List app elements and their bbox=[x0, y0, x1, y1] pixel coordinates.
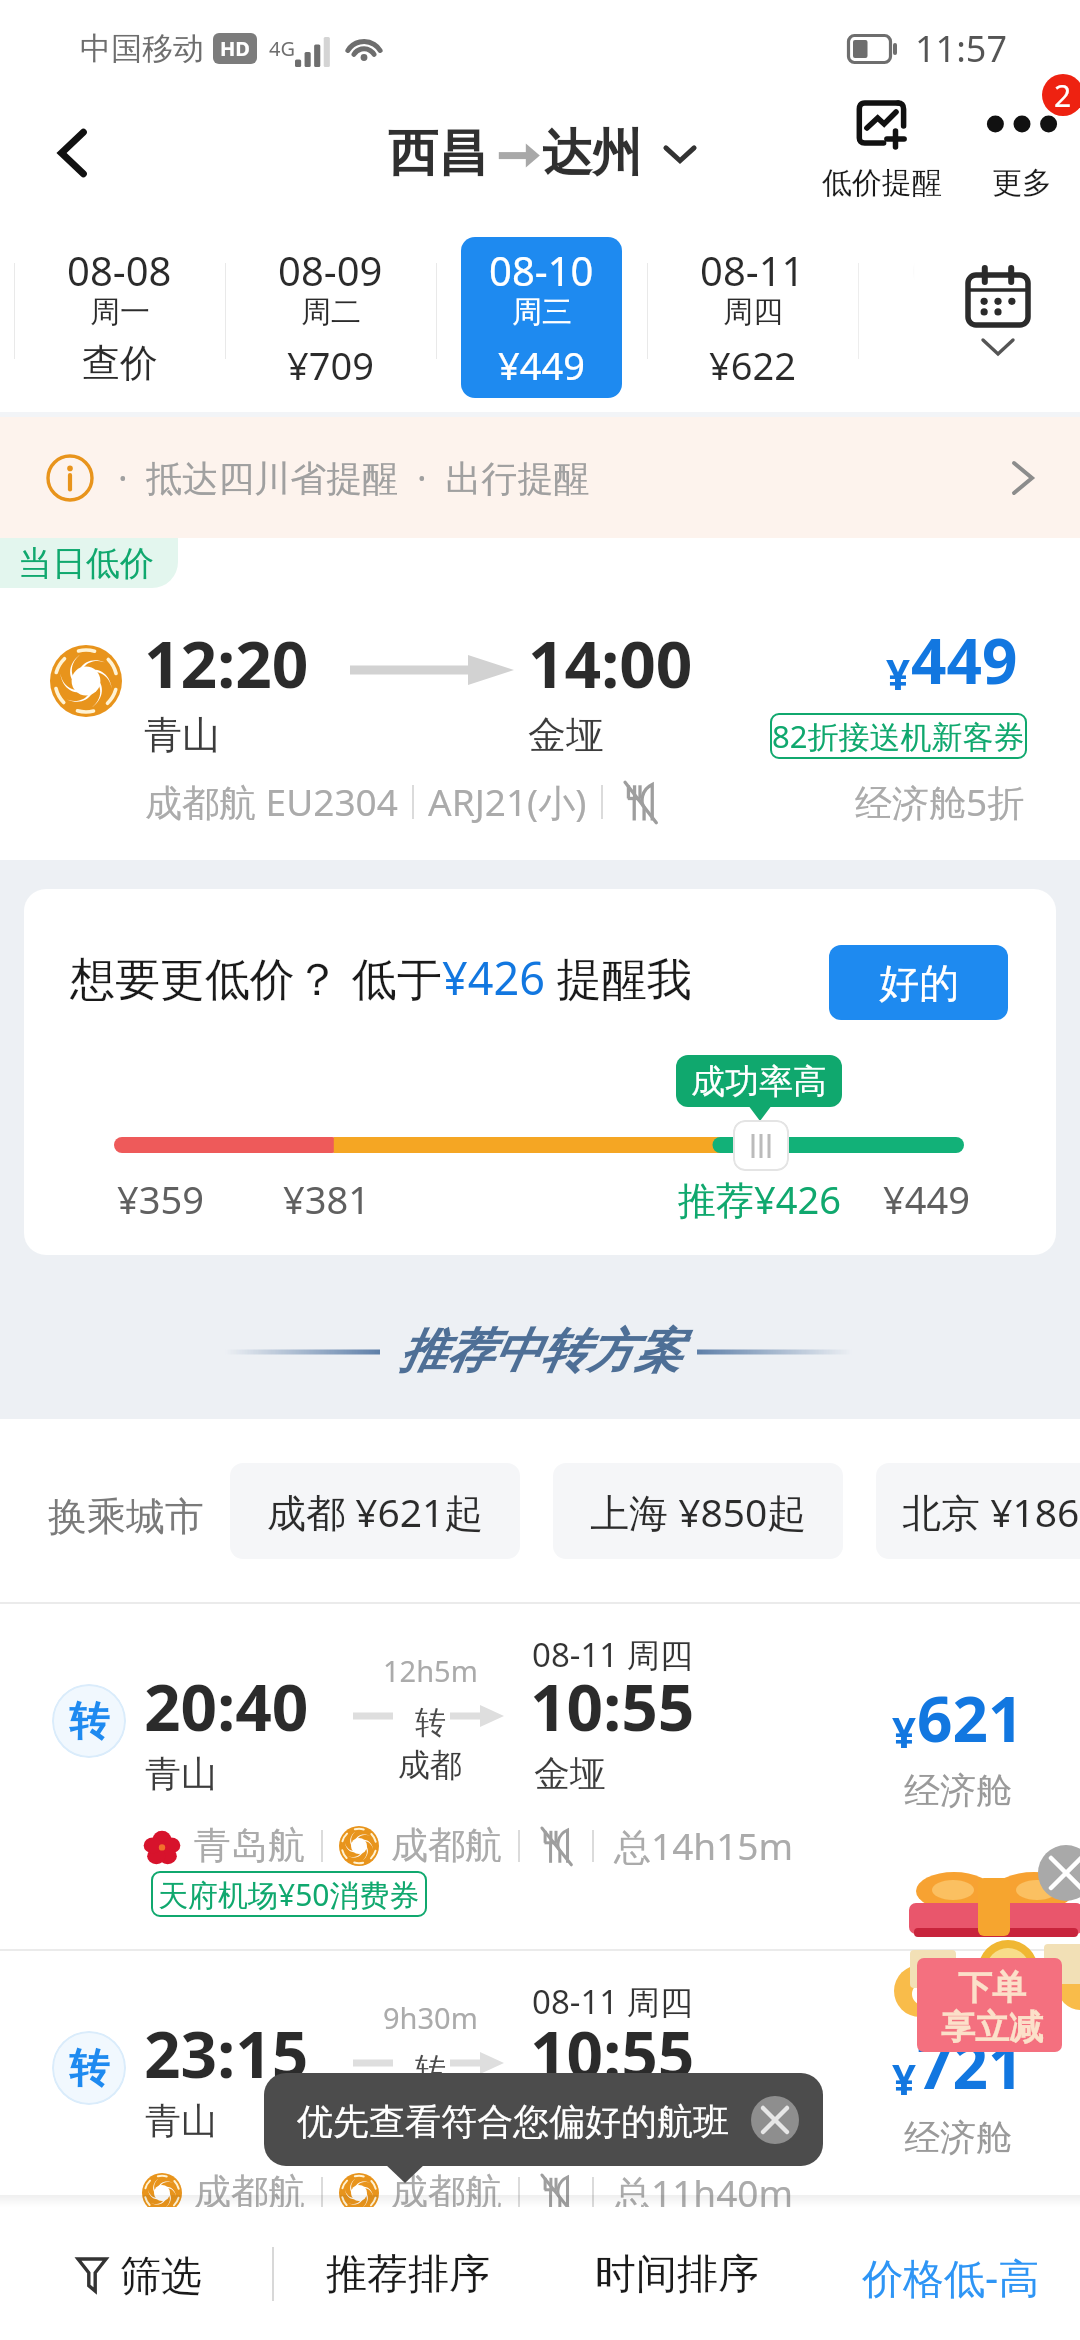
staticText: 青岛航 bbox=[194, 1822, 305, 1869]
staticText: 金垭 bbox=[534, 2098, 606, 2143]
staticText: 08-09 bbox=[278, 243, 383, 297]
staticText: 享立减 bbox=[941, 2006, 1043, 2049]
staticText: 周三 bbox=[512, 293, 572, 331]
staticText: 08-08 bbox=[67, 243, 172, 297]
staticText: 08-10 bbox=[489, 243, 594, 297]
staticText: 转 bbox=[69, 2043, 109, 2093]
staticText: 提醒我 bbox=[545, 947, 692, 1008]
staticText: 低价提醒 bbox=[822, 164, 942, 202]
staticText: 时间排序 bbox=[595, 2249, 759, 2301]
staticText: 推荐中转方案 bbox=[399, 1322, 681, 1381]
button[interactable]: 筛选 bbox=[76, 2251, 202, 2299]
staticText: 11:57 bbox=[915, 24, 1008, 73]
staticText: ¥622 bbox=[709, 339, 796, 391]
button[interactable]: 低价提醒 bbox=[800, 100, 964, 202]
staticText: ¥ bbox=[892, 2050, 917, 2107]
staticText: 12:20 bbox=[144, 620, 309, 707]
staticText: 转 bbox=[415, 2050, 446, 2089]
button[interactable]: 08-08 bbox=[39, 237, 200, 398]
staticText: 价格低-高 bbox=[862, 2249, 1040, 2301]
staticText: 621 bbox=[917, 1676, 1024, 1760]
staticText: 20:40 bbox=[144, 1663, 309, 1750]
staticText: 天府机场¥50消费券 bbox=[158, 1874, 420, 1915]
staticText: 金垭 bbox=[528, 711, 604, 759]
button[interactable]: 西昌 bbox=[388, 122, 696, 185]
button[interactable]: 推荐排序 bbox=[326, 2249, 490, 2301]
staticText: 上海 ¥850起 bbox=[590, 1485, 807, 1538]
staticText: 想要更低价？ 低于 bbox=[70, 947, 442, 1008]
staticText: 成都 ¥621起 bbox=[267, 1485, 484, 1538]
staticText: 经济舱5折 bbox=[855, 776, 1025, 827]
staticText: · 抵达四川省提醒 · 出行提醒 bbox=[118, 453, 590, 502]
staticText: ¥709 bbox=[287, 339, 374, 391]
button[interactable]: 好的 bbox=[829, 945, 1008, 1020]
staticText: 更多 bbox=[992, 164, 1052, 202]
staticText: 成功率高 bbox=[691, 1060, 827, 1103]
button[interactable]: 08-09 bbox=[250, 237, 411, 398]
staticText: 推荐¥426 bbox=[678, 1173, 841, 1225]
staticText: 北京 ¥1860起 bbox=[902, 1485, 1080, 1538]
staticText: ¥388 bbox=[920, 339, 1007, 391]
staticText: 青山 bbox=[145, 1751, 217, 1796]
staticText: 周四 bbox=[723, 293, 783, 331]
staticText: 2 bbox=[1054, 75, 1072, 116]
staticText: 14:00 bbox=[528, 620, 693, 707]
staticText: 721 bbox=[917, 2023, 1024, 2107]
button[interactable]: Open calendar bbox=[915, 210, 1080, 412]
button[interactable]: 08-10 bbox=[461, 237, 622, 398]
staticText: 达州 bbox=[542, 122, 642, 185]
staticText: 换乘城市 bbox=[48, 1492, 204, 1541]
staticText: 08-11 bbox=[700, 243, 805, 297]
staticText: 08-11 周四 bbox=[532, 1979, 693, 2024]
staticText: 总14h15m bbox=[614, 1820, 794, 1871]
button[interactable]: 成都 ¥621起 bbox=[230, 1463, 520, 1559]
staticText: 周一 bbox=[90, 293, 150, 331]
staticText: HD bbox=[220, 35, 250, 62]
staticText: 23:15 bbox=[144, 2010, 309, 2097]
staticText: 查价 bbox=[82, 339, 158, 387]
staticText: 下单 bbox=[958, 1966, 1026, 2009]
button[interactable]: 价格低-高 bbox=[862, 2249, 1040, 2301]
staticText: ARJ21(小) bbox=[428, 776, 587, 827]
staticText: 经济舱 bbox=[904, 1768, 1012, 1813]
staticText: ¥449 bbox=[498, 339, 585, 391]
staticText: 10:55 bbox=[530, 1663, 695, 1750]
button[interactable]: 转 bbox=[0, 1602, 1080, 1949]
button[interactable]: 转 bbox=[0, 1949, 1080, 2197]
button[interactable]: 时间排序 bbox=[595, 2249, 759, 2301]
button[interactable]: Back bbox=[34, 113, 114, 193]
button[interactable]: 08-12 bbox=[883, 237, 1044, 398]
staticText: 转 bbox=[415, 1703, 446, 1742]
staticText: 10:55 bbox=[530, 2010, 695, 2097]
button[interactable]: Close promotion bbox=[1038, 1845, 1080, 1901]
staticText: 08-11 周四 bbox=[532, 1632, 693, 1677]
staticText: 转 bbox=[69, 1696, 109, 1746]
staticText: 08-12 bbox=[911, 243, 1016, 297]
button[interactable]: Dismiss tip bbox=[751, 2096, 799, 2144]
button[interactable]: 北京 ¥1860起 bbox=[876, 1463, 1080, 1559]
staticText: 西昌 bbox=[388, 122, 488, 185]
staticText: ¥ bbox=[886, 645, 911, 702]
staticText: 成都航 EU2304 bbox=[145, 776, 398, 827]
staticText: ¥359 bbox=[117, 1173, 204, 1225]
staticText: 成都航 bbox=[194, 2169, 305, 2216]
staticText: 经济舱 bbox=[904, 2115, 1012, 2160]
staticText: 青山 bbox=[145, 2098, 217, 2143]
button[interactable]: 08-11 bbox=[672, 237, 833, 398]
staticText: 成都 bbox=[398, 2092, 462, 2132]
staticText: 周二 bbox=[301, 293, 361, 331]
staticText: 中国移动 bbox=[80, 29, 204, 68]
staticText: ¥ bbox=[892, 1703, 917, 1760]
staticText: 成都航 bbox=[391, 1822, 502, 1869]
button[interactable]: 更多 bbox=[964, 100, 1080, 202]
staticText: 推荐排序 bbox=[326, 2249, 490, 2301]
staticText: 9h30m bbox=[383, 1998, 478, 2037]
button[interactable]: 当日低价 bbox=[0, 538, 1080, 860]
staticText: 82折接送机新客券 bbox=[772, 715, 1025, 757]
staticText: 好的 bbox=[879, 958, 959, 1008]
staticText: 4G bbox=[269, 35, 295, 62]
staticText: ¥381 bbox=[283, 1173, 370, 1225]
button[interactable]: 上海 ¥850起 bbox=[553, 1463, 843, 1559]
button[interactable]: · 抵达四川省提醒 · 出行提醒 bbox=[0, 417, 1080, 538]
staticText: 周五 bbox=[934, 293, 994, 331]
